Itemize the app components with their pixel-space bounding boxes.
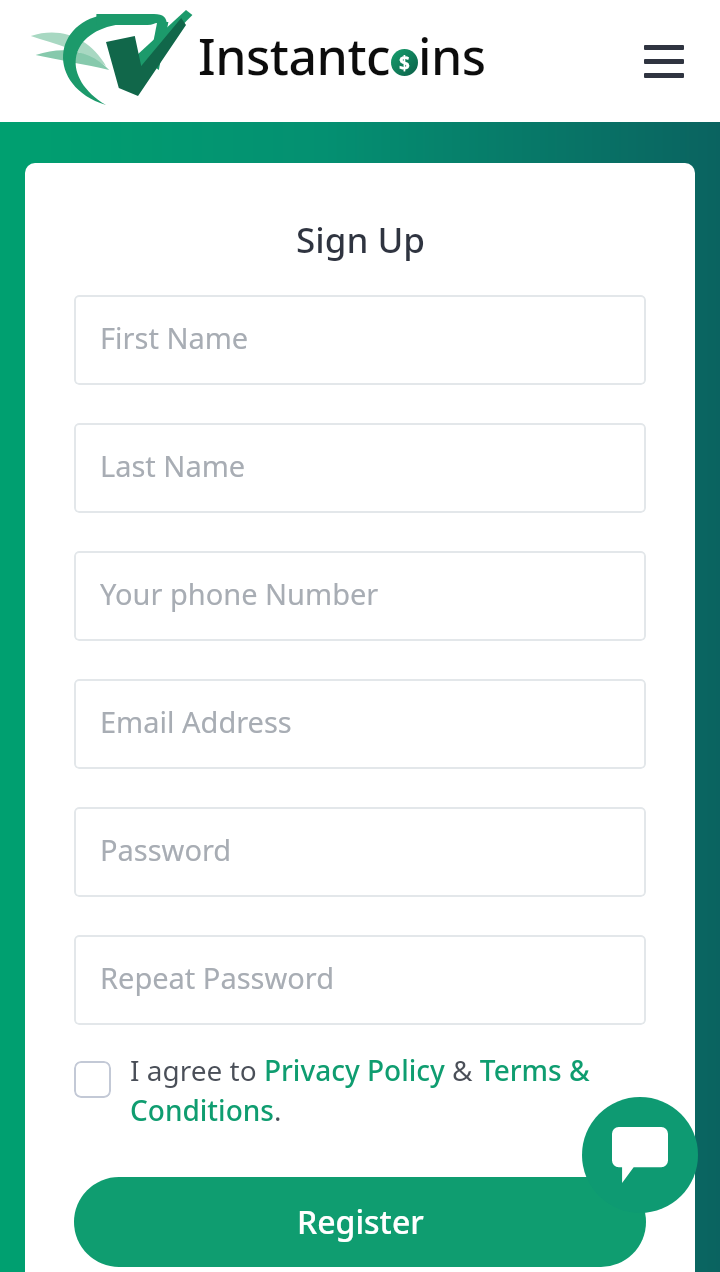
staticText: Instantc bbox=[198, 22, 391, 90]
button[interactable]: Password bbox=[74, 807, 646, 897]
staticText: Sign Up bbox=[296, 216, 425, 264]
staticText: $ bbox=[399, 50, 410, 76]
button[interactable]: Your phone Number bbox=[74, 551, 646, 641]
button[interactable]: Email Address bbox=[74, 679, 646, 769]
staticText: Last Name bbox=[100, 446, 246, 485]
staticText: Your phone Number bbox=[100, 574, 379, 613]
button[interactable]: Repeat Password bbox=[74, 935, 646, 1025]
staticText: First Name bbox=[100, 318, 249, 357]
staticText: Email Address bbox=[100, 702, 292, 741]
button[interactable]: First Name bbox=[74, 295, 646, 385]
button[interactable]: Open navigation menu bbox=[638, 35, 690, 87]
staticText: Register bbox=[297, 1200, 424, 1244]
button[interactable]: I agree to Privacy Policy & Terms & Cond… bbox=[74, 1051, 646, 1130]
staticText: ins bbox=[418, 22, 486, 90]
button[interactable]: Last Name bbox=[74, 423, 646, 513]
button[interactable]: Open chat bbox=[582, 1097, 698, 1213]
staticText: Repeat Password bbox=[100, 958, 335, 997]
button[interactable]: Register bbox=[74, 1177, 646, 1267]
staticText: I agree to Privacy Policy & Terms & Cond… bbox=[130, 1051, 642, 1130]
staticText: Password bbox=[100, 830, 232, 869]
